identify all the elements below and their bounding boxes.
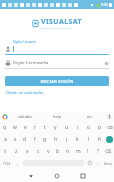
- staticText: o: [87, 124, 91, 131]
- button[interactable]: b: [53, 145, 63, 157]
- button[interactable]: p: [94, 121, 105, 133]
- staticText: Digite Usuario: [13, 39, 36, 44]
- staticText: Digite Contraseña: [13, 60, 103, 66]
- staticText: .: [97, 160, 99, 167]
- staticText: ?: [97, 148, 100, 155]
- button[interactable]: Digite Usuario: [5, 39, 109, 55]
- button[interactable]: w: [10, 121, 20, 133]
- staticText: VISUALSAT: [41, 17, 82, 27]
- button[interactable]: Shift: [0, 145, 11, 157]
- button[interactable]: q: [0, 121, 10, 133]
- staticText: c: [37, 148, 40, 155]
- staticText: g: [43, 136, 47, 143]
- button[interactable]: f: [30, 133, 40, 145]
- staticText: saludos: [18, 114, 33, 119]
- button[interactable]: Olvide mi contraseña: [6, 90, 43, 95]
- staticText: z: [15, 148, 18, 155]
- button[interactable]: j: [61, 133, 72, 145]
- button[interactable]: a: [0, 133, 10, 145]
- staticText: v: [47, 148, 50, 155]
- button[interactable]: d: [20, 133, 30, 145]
- button[interactable]: k: [72, 133, 83, 145]
- staticText: ?123: [3, 161, 11, 166]
- button[interactable]: .: [94, 157, 101, 169]
- staticText: Olvide mi contraseña: [6, 90, 43, 95]
- staticText: en: [87, 114, 92, 119]
- button[interactable]: Enter: [105, 133, 114, 145]
- button[interactable]: Emoji: [85, 157, 94, 169]
- staticText: y: [54, 124, 57, 131]
- button[interactable]: Show password: [103, 60, 109, 66]
- button[interactable]: y: [50, 121, 61, 133]
- button[interactable]: ñ: [94, 133, 105, 145]
- staticText: 9:06: [101, 2, 108, 7]
- button[interactable]: u: [61, 121, 72, 133]
- staticText: INICIAR SESIÓN: [40, 79, 74, 84]
- staticText: hola: [53, 114, 62, 119]
- button[interactable]: n: [63, 145, 73, 157]
- staticText: SERVICIOS SATELITALES: [41, 27, 72, 30]
- button[interactable]: o: [83, 121, 94, 133]
- staticText: u: [65, 124, 69, 131]
- staticText: f: [34, 136, 36, 143]
- button[interactable]: e: [20, 121, 30, 133]
- staticText: a: [4, 136, 7, 143]
- button[interactable]: g: [40, 133, 50, 145]
- staticText: ⇧: [3, 148, 8, 154]
- button[interactable]: Voice input: [105, 112, 114, 121]
- staticText: r: [34, 124, 37, 131]
- staticText: i: [77, 124, 79, 131]
- staticText: p: [98, 124, 102, 131]
- staticText: m: [76, 148, 81, 155]
- button[interactable]: en: [73, 112, 105, 121]
- button[interactable]: i: [72, 121, 83, 133]
- button[interactable]: Backspace: [103, 145, 114, 157]
- button[interactable]: v: [43, 145, 53, 157]
- button[interactable]: z: [11, 145, 22, 157]
- staticText: l: [88, 136, 90, 143]
- staticText: q: [3, 124, 7, 131]
- button[interactable]: h: [50, 133, 61, 145]
- button[interactable]: Backspace: [105, 121, 114, 133]
- button[interactable]: hola: [41, 112, 73, 121]
- staticText: h: [54, 136, 58, 143]
- button[interactable]: x: [22, 145, 33, 157]
- staticText: b: [56, 148, 60, 155]
- staticText: e: [24, 124, 27, 131]
- staticText: t: [44, 124, 46, 131]
- button[interactable]: l: [83, 133, 94, 145]
- staticText: ⌫: [107, 125, 113, 130]
- button[interactable]: saludos: [10, 112, 41, 121]
- button[interactable]: Back: [18, 170, 44, 182]
- staticText: Intro: [104, 161, 112, 166]
- button[interactable]: r: [30, 121, 40, 133]
- staticText: j: [66, 136, 68, 143]
- staticText: ñ: [98, 136, 102, 143]
- staticText: s: [14, 136, 17, 143]
- button[interactable]: m: [73, 145, 83, 157]
- staticText: ⌫: [105, 149, 112, 154]
- button[interactable]: ?: [93, 145, 103, 157]
- button[interactable]: !: [83, 145, 93, 157]
- staticText: ,: [17, 160, 19, 167]
- button[interactable]: Intro: [101, 157, 114, 169]
- button[interactable]: c: [33, 145, 43, 157]
- staticText: n: [66, 148, 70, 155]
- button[interactable]: Recents: [70, 170, 96, 182]
- staticText: w: [13, 124, 17, 131]
- button[interactable]: t: [40, 121, 50, 133]
- staticText: x: [26, 148, 29, 155]
- button[interactable]: Home: [44, 170, 70, 182]
- button[interactable]: s: [10, 133, 20, 145]
- button[interactable]: ,: [14, 157, 22, 169]
- staticText: d: [23, 136, 27, 143]
- button[interactable]: Google: [0, 112, 10, 121]
- staticText: !: [87, 148, 89, 155]
- button[interactable]: INICIAR SESIÓN: [5, 76, 109, 86]
- button[interactable]: Digite Contraseña: [5, 60, 109, 66]
- button[interactable]: ?123: [0, 157, 14, 169]
- staticText: k: [76, 136, 79, 143]
